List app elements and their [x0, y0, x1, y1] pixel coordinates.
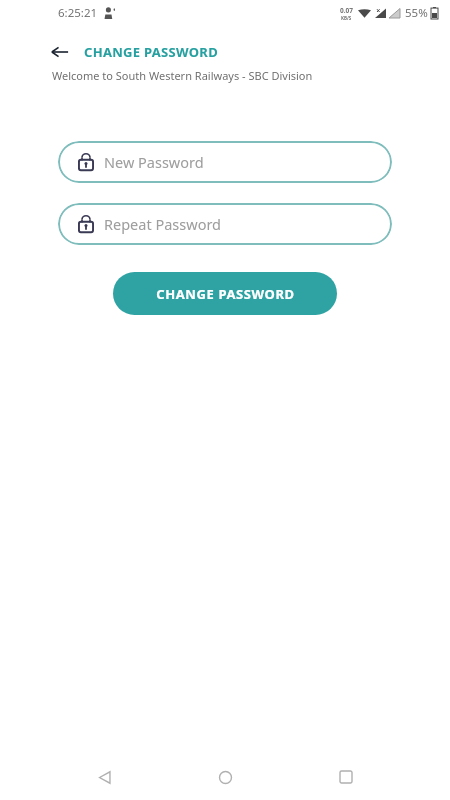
- button[interactable]: Recents: [329, 760, 363, 794]
- staticText: Welcome to South Western Railways - SBC …: [52, 68, 313, 83]
- staticText: KB/S: [341, 15, 352, 21]
- button[interactable]: Back: [46, 38, 74, 66]
- staticText: 55%: [405, 5, 428, 21]
- staticText: 6:25:21: [58, 5, 98, 21]
- staticText: 0.07: [340, 6, 353, 15]
- button[interactable]: Home: [208, 760, 242, 794]
- button[interactable]: New Password: [58, 141, 392, 183]
- button[interactable]: CHANGE PASSWORD: [113, 272, 337, 315]
- button[interactable]: Repeat Password: [58, 203, 392, 245]
- staticText: Repeat Password: [104, 214, 222, 234]
- staticText: CHANGE PASSWORD: [156, 285, 295, 303]
- button[interactable]: Back: [87, 760, 121, 794]
- staticText: CHANGE PASSWORD: [84, 43, 218, 61]
- staticText: New Password: [104, 152, 204, 172]
